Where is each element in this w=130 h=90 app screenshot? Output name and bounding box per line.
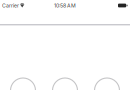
button[interactable]: Option xyxy=(94,78,119,90)
button[interactable]: Option xyxy=(52,78,77,90)
staticText: 10:58 AM xyxy=(54,2,76,9)
staticText: Carrier xyxy=(2,2,19,9)
button[interactable]: Option xyxy=(10,78,35,90)
